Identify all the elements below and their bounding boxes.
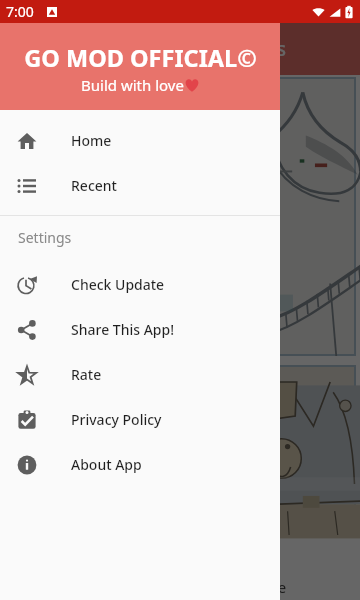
- button[interactable]: Open app item: [4, 365, 356, 535]
- button[interactable]: Recent: [0, 163, 280, 208]
- button[interactable]: Rate: [0, 352, 280, 397]
- button[interactable]: Share This App!: [0, 307, 280, 352]
- staticText: GO MOD Apps: [156, 36, 287, 62]
- staticText: Check Update: [71, 275, 165, 294]
- staticText: Blue Whale: [207, 577, 287, 597]
- staticText: Share This App!: [71, 320, 175, 339]
- staticText: 7:00: [6, 2, 34, 21]
- button[interactable]: Check Update: [0, 262, 280, 307]
- staticText: Recent: [71, 176, 117, 195]
- button[interactable]: Home: [0, 118, 280, 163]
- button[interactable]: Open app item: [4, 77, 356, 356]
- staticText: Rate: [71, 365, 102, 384]
- staticText: Settings: [18, 228, 72, 247]
- button[interactable]: Privacy Policy: [0, 397, 280, 442]
- button[interactable]: About App: [0, 442, 280, 487]
- staticText: GO MOD OFFICIAL©: [24, 42, 257, 74]
- staticText: Home: [71, 131, 112, 150]
- staticText: Build with love: [81, 75, 184, 95]
- staticText: Privacy Policy: [71, 410, 162, 429]
- staticText: About App: [71, 455, 142, 474]
